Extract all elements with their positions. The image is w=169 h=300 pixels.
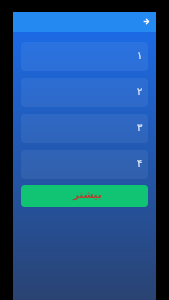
staticText: ۲ bbox=[137, 86, 143, 98]
button[interactable]: ۲ bbox=[21, 78, 148, 107]
staticText: ۱ bbox=[137, 50, 143, 62]
button[interactable]: بیشتر bbox=[21, 185, 148, 207]
button[interactable]: Next bbox=[138, 15, 152, 29]
button[interactable]: ۳ bbox=[21, 114, 148, 143]
button[interactable]: ۱ bbox=[21, 42, 148, 71]
staticText: ۴ bbox=[137, 158, 143, 170]
staticText: بیشتر bbox=[24, 189, 148, 201]
button[interactable]: ۴ bbox=[21, 150, 148, 179]
staticText: ۳ bbox=[137, 122, 143, 134]
